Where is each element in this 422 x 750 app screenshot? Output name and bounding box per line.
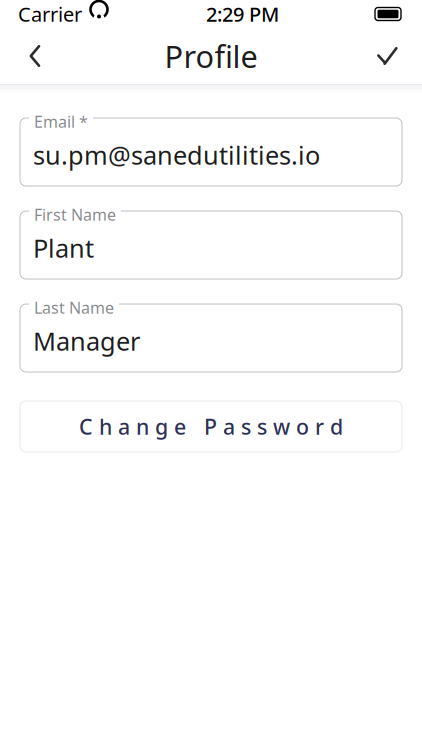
staticText: First Name (34, 204, 116, 225)
staticText: Profile (164, 36, 257, 76)
staticText: su.pm@sanedutilities.io (33, 138, 320, 172)
staticText: Carrier (18, 1, 82, 27)
button[interactable]: C h a n g e P a s s w o r d (20, 401, 402, 452)
staticText: Email * (34, 111, 88, 132)
button[interactable]: Back (12, 33, 58, 79)
staticText: Last Name (34, 297, 114, 318)
staticText: Plant (33, 231, 94, 265)
staticText: C h a n g e P a s s w o r d (79, 412, 343, 441)
staticText: Manager (33, 324, 140, 358)
staticText: 2:29 PM (206, 1, 279, 27)
button[interactable]: Save (364, 33, 410, 79)
